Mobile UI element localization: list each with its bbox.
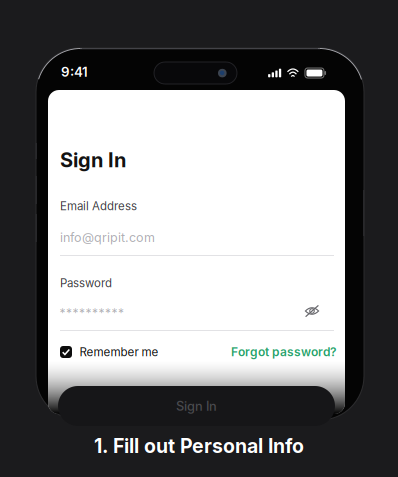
staticText: Sign In	[60, 148, 126, 172]
staticText: *	[92, 306, 98, 320]
staticText: *	[118, 306, 124, 320]
button[interactable]: Remember me	[60, 342, 164, 362]
staticText: Email Address	[60, 199, 137, 213]
staticText: 9:41	[61, 64, 88, 80]
staticText: *	[111, 306, 117, 320]
staticText: *	[79, 306, 85, 320]
button[interactable]: Show password	[299, 299, 325, 323]
staticText: Sign In	[176, 398, 217, 414]
staticText: Forgot password?	[231, 345, 337, 359]
staticText: Password	[60, 276, 112, 290]
staticText: *	[98, 306, 104, 320]
button[interactable]: Sign In	[58, 386, 335, 426]
staticText: *	[105, 306, 111, 320]
button[interactable]: Forgot password?	[231, 342, 337, 362]
staticText: *	[72, 306, 78, 320]
staticText: info@qripit.com	[60, 230, 155, 245]
staticText: *	[66, 306, 72, 320]
staticText: 1. Fill out Personal Info	[94, 434, 304, 458]
staticText: *	[59, 306, 65, 320]
staticText: Remember me	[79, 345, 158, 359]
staticText: *	[85, 306, 91, 320]
